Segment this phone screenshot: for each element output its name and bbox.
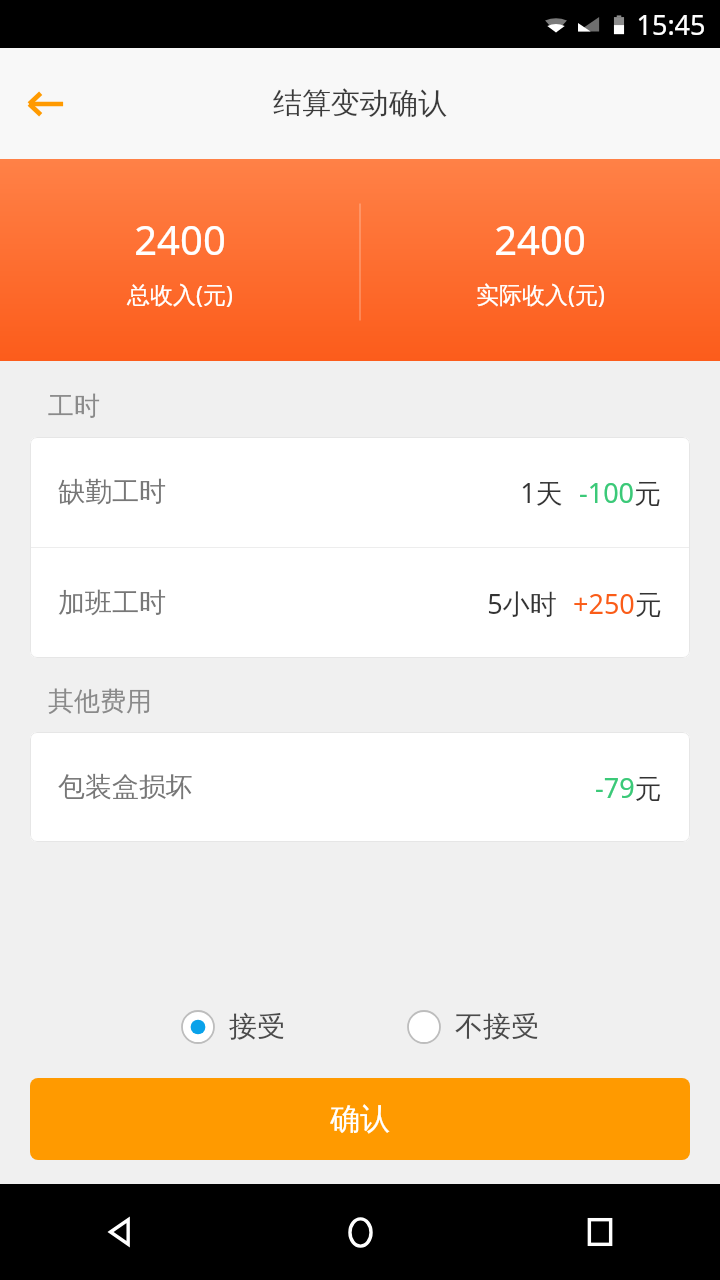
staticText: 结算变动确认 [273, 85, 447, 122]
button[interactable]: 加班工时 [30, 548, 690, 658]
button[interactable]: 缺勤工时 [30, 437, 690, 547]
button[interactable]: 接受 [177, 1005, 289, 1048]
staticText: 其他费用 [48, 685, 152, 718]
button[interactable]: 包装盒损坏 [30, 732, 690, 842]
button[interactable]: Recents [480, 1184, 720, 1280]
staticText: 包装盒损坏 [58, 770, 193, 804]
staticText: 1天 [520, 474, 563, 511]
staticText: -79元 [595, 769, 662, 806]
button[interactable]: 不接受 [403, 1005, 543, 1048]
button[interactable]: Back [0, 1184, 240, 1280]
staticText: 实际收入(元) [476, 278, 605, 309]
staticText: 2400 [494, 212, 586, 266]
staticText: 5小时 [487, 585, 557, 622]
staticText: 15:45 [636, 6, 706, 43]
staticText: 工时 [48, 390, 100, 423]
staticText: 加班工时 [58, 586, 166, 620]
staticText: 确认 [330, 1100, 390, 1138]
button[interactable]: Back [16, 74, 76, 134]
button[interactable]: Home [240, 1184, 480, 1280]
staticText: 接受 [229, 1009, 285, 1044]
staticText: +250元 [573, 585, 662, 622]
button[interactable]: 确认 [30, 1078, 690, 1160]
staticText: 缺勤工时 [58, 475, 166, 509]
staticText: 不接受 [455, 1009, 539, 1044]
staticText: -100元 [579, 474, 662, 511]
staticText: 总收入(元) [127, 278, 233, 309]
staticText: 2400 [134, 212, 226, 266]
